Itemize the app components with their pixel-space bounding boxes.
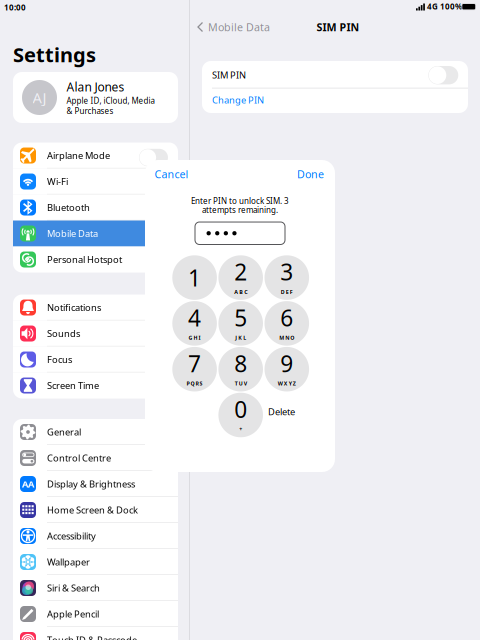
staticText: T U V (235, 380, 247, 387)
button[interactable]: Mobile Data (13, 220, 178, 246)
staticText: Focus (47, 353, 72, 366)
button[interactable]: 7 (172, 347, 217, 391)
button[interactable]: 5 (218, 301, 263, 346)
staticText: Sounds (47, 327, 80, 340)
staticText: Accessibility (47, 530, 96, 542)
staticText: Mobile Data (47, 227, 98, 240)
button[interactable]: Focus (13, 346, 178, 372)
staticText: Bluetooth (47, 201, 90, 214)
staticText: SIM PIN (316, 20, 359, 34)
button[interactable]: Airplane Mode (13, 142, 178, 168)
button[interactable]: Home Screen & Dock (13, 497, 178, 523)
button[interactable]: Sounds (13, 320, 178, 346)
staticText: attempts remaining. (202, 204, 278, 215)
staticText: Change PIN (212, 94, 264, 106)
staticText: Airplane Mode (47, 149, 110, 162)
button[interactable]: Wi-Fi (13, 168, 178, 194)
button[interactable]: 9 (264, 347, 309, 391)
staticText: Notifications (47, 301, 101, 314)
button[interactable]: SIM PIN toggle (428, 66, 458, 84)
staticText: AJ (32, 88, 46, 107)
staticText: Alan Jones (66, 79, 124, 95)
staticText: G H I (189, 334, 201, 341)
staticText: Enter PIN to unlock SIM. 3 (191, 196, 289, 206)
staticText: Apple ID, iCloud, Media (66, 95, 154, 106)
staticText: M N O (279, 334, 294, 341)
staticText: Delete (268, 405, 295, 418)
staticText: 9 (280, 348, 293, 378)
button[interactable]: Wallpaper (13, 549, 178, 575)
staticText: Apple Pencil (47, 608, 99, 620)
button[interactable]: 0 (218, 393, 263, 437)
staticText: Siri & Search (47, 582, 100, 594)
button[interactable]: Screen Time (13, 372, 178, 398)
staticText: + (239, 426, 242, 433)
staticText: Display & Brightness (47, 478, 135, 490)
staticText: General (47, 426, 81, 438)
staticText: 4 (188, 303, 201, 333)
staticText: J K L (235, 334, 246, 341)
button[interactable]: Notifications (13, 294, 178, 320)
staticText: Settings (13, 41, 96, 68)
button[interactable]: Change PIN (212, 94, 412, 106)
button[interactable]: Siri & Search (13, 575, 178, 601)
button[interactable]: 6 (264, 301, 309, 346)
staticText: & Purchases (66, 106, 113, 116)
staticText: Home Screen & Dock (47, 504, 138, 516)
button[interactable]: Mobile Data (197, 20, 297, 34)
staticText: W X Y Z (278, 380, 296, 387)
staticText: 3 (280, 257, 293, 287)
staticText: 1 (188, 262, 201, 293)
staticText: 4G 100% (427, 1, 462, 12)
staticText: 2 (234, 257, 247, 287)
button[interactable]: Touch ID & Passcode (13, 627, 178, 640)
button[interactable]: 4 (172, 301, 217, 346)
staticText: D E F (281, 288, 293, 295)
button[interactable]: Cancel (154, 167, 214, 181)
button[interactable]: 1 (172, 255, 217, 300)
button[interactable]: 2 (218, 255, 263, 300)
staticText: 5 (234, 303, 247, 333)
button[interactable]: Bluetooth (13, 194, 178, 220)
staticText: Done (297, 167, 324, 181)
staticText: Wallpaper (47, 556, 90, 568)
staticText: Cancel (154, 167, 188, 181)
staticText: Personal Hotspot (47, 253, 122, 266)
staticText: AA (22, 478, 34, 490)
staticText: P Q R S (187, 380, 203, 387)
staticText: Control Centre (47, 452, 111, 464)
staticText: Wi-Fi (47, 175, 68, 188)
staticText: 6 (280, 303, 293, 333)
button[interactable]: Control Centre (13, 445, 178, 471)
staticText: SIM PIN (212, 69, 246, 81)
staticText: 8 (234, 348, 247, 378)
button[interactable]: 3 (264, 255, 309, 300)
staticText: 0 (234, 394, 247, 424)
button[interactable]: Personal Hotspot (13, 246, 178, 272)
staticText: A B C (234, 288, 247, 295)
button[interactable]: Delete (268, 405, 318, 418)
button[interactable]: Apple Pencil (13, 601, 178, 627)
button[interactable]: 8 (218, 347, 263, 391)
button[interactable]: Done (264, 167, 324, 181)
button[interactable]: AA (13, 471, 178, 497)
staticText: Touch ID & Passcode (47, 634, 137, 640)
staticText: 10:00 (4, 2, 26, 13)
button[interactable]: General (13, 419, 178, 445)
staticText: Mobile Data (208, 20, 270, 34)
staticText: Screen Time (47, 379, 99, 392)
staticText: 7 (188, 348, 201, 378)
button[interactable]: Accessibility (13, 523, 178, 549)
